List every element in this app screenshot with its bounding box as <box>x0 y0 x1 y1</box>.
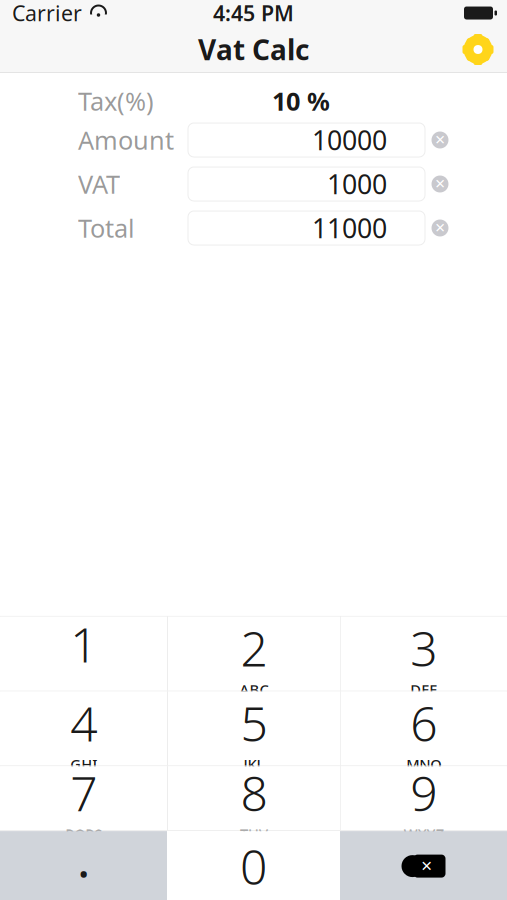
staticText: 0 <box>240 834 267 898</box>
staticText: ✕ <box>420 858 432 874</box>
staticText: 4 <box>70 691 97 755</box>
staticText: Tax(%) <box>78 84 154 118</box>
button[interactable]: 10 % <box>195 85 407 117</box>
button[interactable]: 2 <box>168 617 340 691</box>
staticText: Amount <box>78 123 174 157</box>
button[interactable]: 9 <box>341 766 507 830</box>
staticText: 10 % <box>272 84 330 118</box>
staticText: ✕ <box>434 132 445 147</box>
staticText: 6 <box>410 691 437 755</box>
button[interactable]: 5 <box>168 691 340 765</box>
staticText: DEF <box>410 680 437 699</box>
staticText: Carrier <box>12 0 82 27</box>
button[interactable]: 0 <box>167 831 340 900</box>
button[interactable]: 4 <box>0 691 167 765</box>
staticText: ABC <box>239 680 268 699</box>
staticText: 5 <box>240 691 267 755</box>
button[interactable]: 8 <box>168 766 340 830</box>
staticText: Vat Calc <box>198 31 309 68</box>
staticText: ✕ <box>434 176 445 191</box>
button[interactable]: 7 <box>0 766 167 830</box>
staticText: 7 <box>70 761 97 824</box>
button[interactable]: Clear VAT <box>425 167 455 201</box>
staticText: 10000 <box>312 122 387 158</box>
staticText: 2 <box>240 616 267 680</box>
staticText: VAT <box>78 167 120 201</box>
staticText: WXYZ <box>404 824 444 844</box>
button[interactable]: 1 <box>0 617 167 691</box>
staticText: JKL <box>243 755 264 774</box>
button[interactable]: Settings <box>455 26 501 72</box>
staticText: 1000 <box>327 166 387 202</box>
button[interactable]: Clear Amount <box>425 123 455 157</box>
staticText: TUV <box>240 824 268 844</box>
staticText: MNO <box>406 755 441 774</box>
staticText: 9 <box>410 761 437 824</box>
button[interactable]: Decimal point <box>0 831 167 900</box>
staticText: Total <box>78 211 135 245</box>
staticText: PQRS <box>65 824 102 844</box>
staticText: . <box>77 830 89 890</box>
staticText: 1 <box>70 612 97 676</box>
button[interactable]: 6 <box>341 691 507 765</box>
staticText: ✕ <box>434 220 445 235</box>
staticText: 11000 <box>312 210 387 246</box>
button[interactable]: Clear Total <box>425 211 455 245</box>
button[interactable]: Delete <box>340 831 507 900</box>
button[interactable]: 3 <box>341 617 507 691</box>
staticText: 4:45 PM <box>213 0 294 27</box>
staticText: 3 <box>410 616 437 680</box>
staticText: GHI <box>70 755 97 774</box>
staticText: 8 <box>240 761 267 824</box>
